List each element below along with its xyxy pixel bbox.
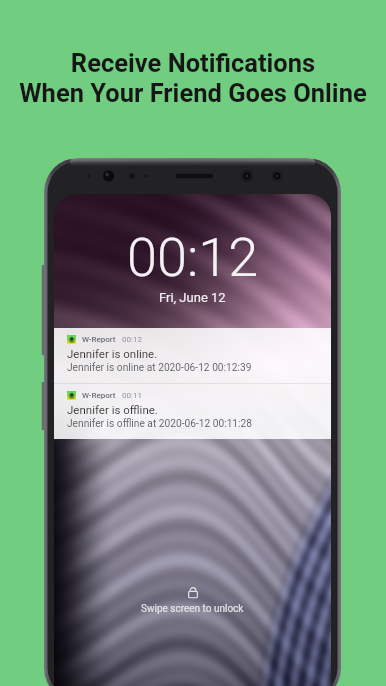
- button[interactable]: W-Report: [54, 384, 331, 439]
- staticText: Fri, June 12: [159, 290, 226, 305]
- staticText: W-Report: [82, 335, 116, 344]
- staticText: Jennifer is offline at 2020-06-12 00:11:…: [67, 418, 253, 430]
- staticText: Swipe screen to unlock: [141, 603, 244, 615]
- staticText: 00:12: [127, 226, 259, 289]
- button[interactable]: W-Report: [54, 328, 331, 383]
- other: Locked: [186, 586, 200, 600]
- staticText: Receive Notifications When Your Friend G…: [19, 48, 367, 108]
- staticText: Jennifer is online at 2020-06-12 00:12:3…: [67, 362, 252, 374]
- staticText: Jennifer is online.: [67, 347, 158, 360]
- staticText: 00:11: [122, 391, 142, 400]
- staticText: Jennifer is offline.: [67, 403, 158, 416]
- staticText: W-Report: [82, 391, 116, 400]
- staticText: 00:12: [122, 335, 142, 344]
